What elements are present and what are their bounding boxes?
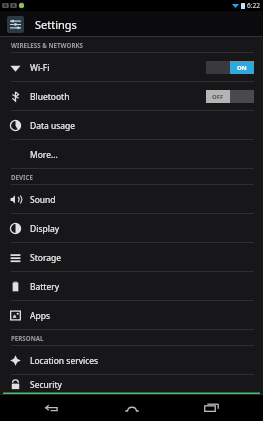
button[interactable]: Back [25,394,79,421]
button[interactable]: Display [0,214,263,243]
staticText: Wi-Fi [30,62,50,74]
staticText: Display [30,223,59,235]
staticText: PERSONAL [11,334,44,342]
button[interactable]: Apps [0,301,263,330]
staticText: Security [30,379,62,391]
button[interactable]: Bluetooth [0,82,263,111]
button[interactable]: Home [105,394,159,421]
staticText: ON [237,64,247,72]
staticText: Location services [30,355,99,367]
staticText: Data usage [30,120,76,132]
staticText: Sound [30,194,56,206]
staticText: More... [30,149,58,161]
button[interactable]: Wi-Fi [0,53,263,82]
button[interactable]: Sound [0,185,263,214]
staticText: WIRELESS & NETWORKS [11,41,83,49]
button[interactable]: Storage [0,243,263,272]
button[interactable]: Recent apps [184,394,238,421]
staticText: Battery [30,281,60,293]
button[interactable]: Security [0,375,263,394]
button[interactable]: More... [0,140,263,169]
button[interactable]: Location services [0,346,263,375]
staticText: DEVICE [11,173,33,181]
button[interactable]: Data usage [0,111,263,140]
staticText: Settings [35,17,77,32]
staticText: Storage [30,252,62,264]
staticText: Apps [30,310,50,322]
staticText: OFF [212,93,224,101]
button[interactable]: Battery [0,272,263,301]
staticText: Bluetooth [30,91,70,103]
staticText: 6:22 [247,1,260,10]
